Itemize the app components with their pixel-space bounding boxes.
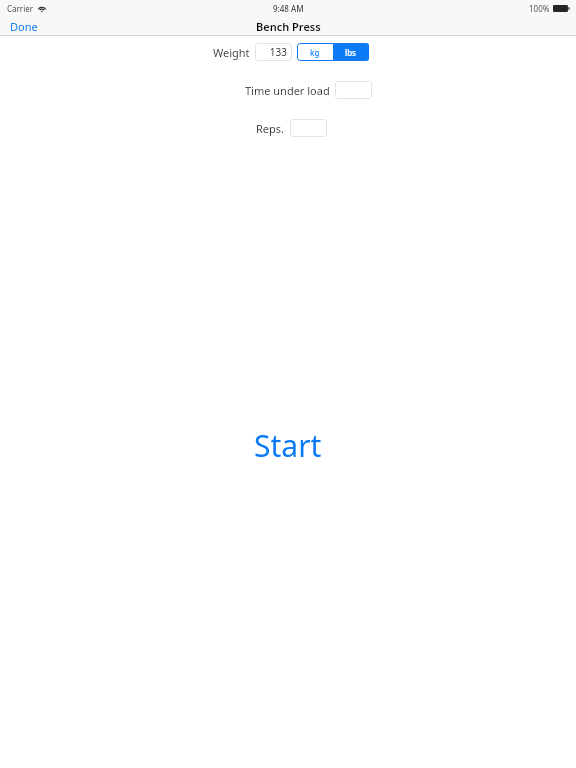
staticText: lbs xyxy=(345,47,357,58)
staticText: Time under load xyxy=(245,83,330,98)
staticText: Carrier xyxy=(7,3,34,14)
staticText: Weight xyxy=(213,45,250,60)
button[interactable] xyxy=(290,119,327,137)
staticText: Done xyxy=(10,19,38,34)
button[interactable]: 133 xyxy=(255,43,292,61)
staticText: 133 xyxy=(269,45,287,59)
button[interactable]: Done xyxy=(0,17,48,36)
staticText: Reps. xyxy=(256,121,285,136)
button[interactable]: kg xyxy=(297,43,333,61)
staticText: kg xyxy=(310,47,320,58)
staticText: 9:48 AM xyxy=(273,3,304,14)
staticText: Bench Press xyxy=(256,19,321,34)
button[interactable] xyxy=(335,81,372,99)
button[interactable]: Start xyxy=(236,419,340,472)
button[interactable]: lbs xyxy=(333,43,369,61)
staticText: Start xyxy=(254,425,322,466)
staticText: 100% xyxy=(529,3,550,14)
